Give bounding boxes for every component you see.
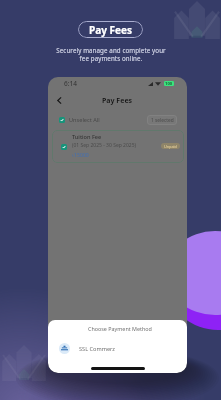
staticText: Choose Payment Method: [88, 325, 152, 332]
staticText: Unpaid: [164, 144, 177, 149]
staticText: 100: [165, 81, 173, 86]
staticText: Securely manage and complete your fee pa…: [56, 46, 166, 62]
button[interactable]: Back: [52, 93, 66, 107]
staticText: Unselect All: [69, 116, 100, 124]
staticText: Tuition Fee: [72, 133, 102, 141]
staticText: Pay Fees: [89, 23, 132, 37]
button[interactable]: Unselect All: [59, 114, 100, 125]
staticText: 6:14: [64, 79, 77, 88]
staticText: SSL Commerz: [79, 345, 116, 353]
button[interactable]: 1 selected: [147, 115, 177, 125]
staticText: Pay Fees: [102, 96, 133, 106]
button[interactable]: Tuition Fee: [52, 130, 184, 163]
button[interactable]: SSL Commerz: [48, 341, 187, 356]
staticText: ৳15000: [72, 151, 89, 158]
staticText: (01 Sep 2025 - 30 Sep 2025): [72, 142, 137, 149]
button[interactable]: Pay Fees: [78, 21, 143, 38]
staticText: 1 selected: [151, 117, 174, 124]
